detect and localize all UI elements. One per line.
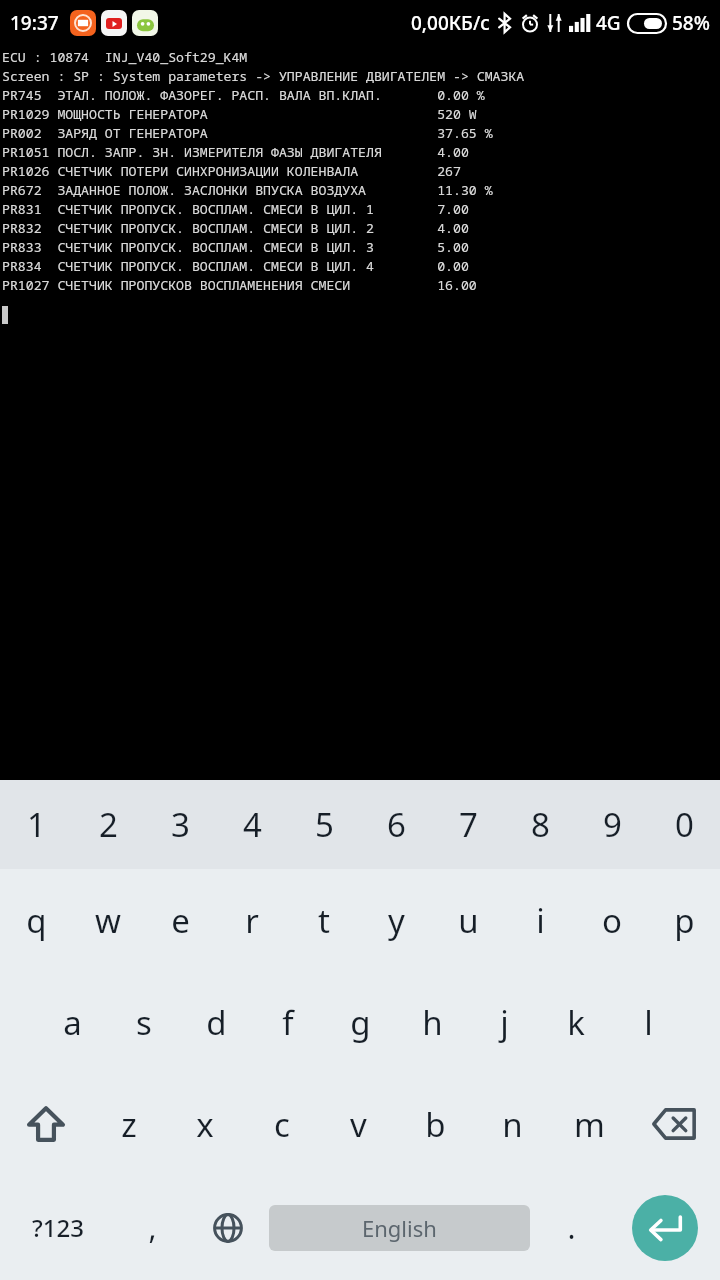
button[interactable]: n: [474, 1073, 551, 1175]
button[interactable]: Shift: [0, 1073, 91, 1175]
button[interactable]: j: [468, 971, 540, 1073]
staticText: g: [350, 1000, 371, 1045]
staticText: v: [350, 1102, 367, 1147]
staticText: .: [567, 1207, 576, 1248]
staticText: p: [674, 898, 695, 943]
button[interactable]: Backspace: [628, 1073, 720, 1175]
button[interactable]: g: [324, 971, 396, 1073]
button[interactable]: 6: [360, 780, 432, 869]
staticText: PR1027 СЧЕТЧИК ПРОПУСКОВ ВОСПЛАМЕНЕНИЯ С…: [2, 276, 477, 295]
button[interactable]: v: [320, 1073, 397, 1175]
staticText: c: [274, 1102, 290, 1147]
button[interactable]: ,: [115, 1175, 190, 1280]
button[interactable]: 1: [0, 780, 72, 869]
staticText: 8: [531, 802, 550, 847]
staticText: PR1029 МОЩНОСТЬ ГЕНЕРАТОРА 520 W: [2, 105, 477, 124]
button[interactable]: o: [576, 869, 648, 971]
button[interactable]: Enter: [632, 1195, 698, 1261]
button[interactable]: i: [504, 869, 576, 971]
staticText: j: [500, 1000, 509, 1045]
button[interactable]: c: [243, 1073, 320, 1175]
button[interactable]: p: [648, 869, 720, 971]
staticText: 4: [243, 802, 262, 847]
button[interactable]: ?123: [0, 1175, 115, 1280]
button[interactable]: l: [612, 971, 684, 1073]
button[interactable]: f: [252, 971, 324, 1073]
staticText: Screen : SP : System parameters -> УПРАВ…: [2, 67, 525, 86]
staticText: y: [388, 898, 405, 943]
staticText: PR1051 ПОСЛ. ЗАПР. ЗН. ИЗМЕРИТЕЛЯ ФАЗЫ Д…: [2, 143, 469, 162]
staticText: q: [26, 898, 47, 943]
staticText: h: [422, 1000, 443, 1045]
staticText: a: [63, 1000, 82, 1045]
button[interactable]: 4: [216, 780, 288, 869]
staticText: o: [602, 898, 622, 943]
staticText: f: [282, 1000, 294, 1045]
button[interactable]: Change language: [190, 1175, 265, 1280]
staticText: n: [502, 1102, 523, 1147]
staticText: PR1026 СЧЕТЧИК ПОТЕРИ СИНХРОНИЗАЦИИ КОЛЕ…: [2, 162, 461, 181]
staticText: 2: [99, 802, 118, 847]
staticText: b: [425, 1102, 446, 1147]
staticText: 4G: [596, 10, 621, 36]
button[interactable]: 2: [72, 780, 144, 869]
button[interactable]: r: [216, 869, 288, 971]
button[interactable]: y: [360, 869, 432, 971]
staticText: t: [318, 898, 330, 943]
button[interactable]: u: [432, 869, 504, 971]
staticText: ?123: [32, 1211, 84, 1244]
staticText: PR831 СЧЕТЧИК ПРОПУСК. ВОСПЛАМ. СМЕСИ В …: [2, 200, 469, 219]
staticText: u: [458, 898, 479, 943]
staticText: l: [644, 1000, 653, 1045]
button[interactable]: b: [397, 1073, 474, 1175]
staticText: 1: [27, 802, 46, 847]
staticText: ECU : 10874 INJ_V40_Soft29_K4M: [2, 48, 248, 67]
staticText: s: [136, 1000, 152, 1045]
staticText: English: [362, 1213, 437, 1243]
staticText: x: [196, 1102, 214, 1147]
button[interactable]: 8: [504, 780, 576, 869]
button[interactable]: h: [396, 971, 468, 1073]
button[interactable]: 5: [288, 780, 360, 869]
button[interactable]: d: [180, 971, 252, 1073]
staticText: PR745 ЭТАЛ. ПОЛОЖ. ФАЗОРЕГ. РАСП. ВАЛА В…: [2, 86, 485, 105]
button[interactable]: .: [534, 1175, 609, 1280]
staticText: d: [206, 1000, 227, 1045]
staticText: ,: [148, 1207, 157, 1248]
staticText: 9: [603, 802, 622, 847]
staticText: PR672 ЗАДАННОЕ ПОЛОЖ. ЗАСЛОНКИ ВПУСКА ВО…: [2, 181, 493, 200]
staticText: PR002 ЗАРЯД ОТ ГЕНЕРАТОРА 37.65 %: [2, 124, 493, 143]
staticText: e: [171, 898, 190, 943]
button[interactable]: 3: [144, 780, 216, 869]
button[interactable]: k: [540, 971, 612, 1073]
staticText: i: [536, 898, 545, 943]
staticText: PR832 СЧЕТЧИК ПРОПУСК. ВОСПЛАМ. СМЕСИ В …: [2, 219, 469, 238]
staticText: 19:37: [10, 10, 59, 36]
staticText: m: [574, 1102, 605, 1147]
button[interactable]: e: [144, 869, 216, 971]
staticText: 7: [459, 802, 478, 847]
button[interactable]: a: [36, 971, 108, 1073]
staticText: 5: [315, 802, 334, 847]
staticText: 58%: [672, 10, 710, 36]
staticText: w: [95, 898, 121, 943]
staticText: k: [567, 1000, 585, 1045]
staticText: PR834 СЧЕТЧИК ПРОПУСК. ВОСПЛАМ. СМЕСИ В …: [2, 257, 469, 276]
button[interactable]: 0: [648, 780, 720, 869]
button[interactable]: m: [551, 1073, 628, 1175]
staticText: z: [121, 1102, 137, 1147]
button[interactable]: w: [72, 869, 144, 971]
staticText: 6: [387, 802, 406, 847]
button[interactable]: q: [0, 869, 72, 971]
button[interactable]: 9: [576, 780, 648, 869]
button[interactable]: x: [167, 1073, 243, 1175]
button[interactable]: t: [288, 869, 360, 971]
staticText: 3: [171, 802, 190, 847]
staticText: PR833 СЧЕТЧИК ПРОПУСК. ВОСПЛАМ. СМЕСИ В …: [2, 238, 469, 257]
button[interactable]: z: [91, 1073, 167, 1175]
staticText: 0,00КБ/с: [411, 10, 490, 36]
button[interactable]: 7: [432, 780, 504, 869]
staticText: r: [245, 898, 259, 943]
button[interactable]: English: [269, 1205, 530, 1251]
button[interactable]: s: [108, 971, 180, 1073]
